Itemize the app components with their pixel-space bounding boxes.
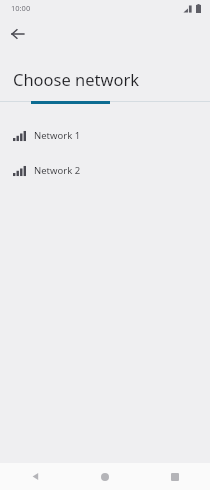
staticText: 10:00	[11, 3, 31, 13]
button[interactable]: Network 1	[0, 118, 210, 153]
staticText: Network 2	[34, 164, 81, 177]
button[interactable]: Navigate up	[5, 21, 31, 47]
button[interactable]: Recent apps	[140, 463, 210, 490]
button[interactable]: Back	[0, 463, 70, 490]
button[interactable]: Network 2	[0, 153, 210, 188]
button[interactable]: Home	[70, 463, 140, 490]
staticText: Choose network	[13, 68, 140, 90]
staticText: Network 1	[34, 129, 81, 142]
